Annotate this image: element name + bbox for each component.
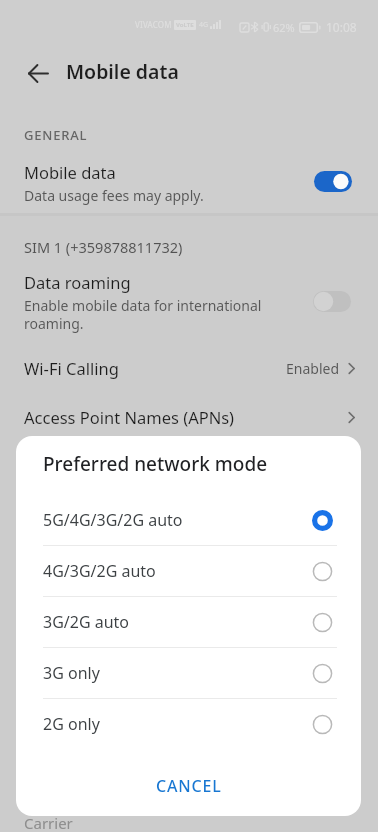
staticText: Mobile data [24, 161, 116, 183]
staticText: 3G/2G auto [43, 611, 312, 633]
button[interactable]: Turn on [313, 291, 351, 312]
button[interactable]: CANCEL [138, 765, 240, 807]
staticText: Access Point Names (APNs) [24, 406, 235, 428]
staticText: 10:08 [326, 19, 357, 35]
button[interactable]: Access Point Names (APNs) [0, 395, 378, 439]
staticText: 5G/4G/3G/2G auto [43, 509, 312, 531]
staticText: CANCEL [156, 775, 222, 797]
staticText: Data roaming [24, 271, 131, 293]
button[interactable]: 4G/3G/2G auto [16, 546, 361, 596]
staticText: 62% [273, 20, 295, 35]
staticText: 3G only [43, 662, 312, 684]
staticText: Enable mobile data for international roa… [24, 296, 271, 333]
staticText: 4G/3G/2G auto [43, 560, 312, 582]
button[interactable]: 3G only [16, 648, 361, 698]
staticText: VoLTE [176, 21, 194, 29]
staticText: Carrier [24, 813, 73, 832]
staticText: 4G [199, 20, 209, 30]
staticText: Mobile data [66, 58, 179, 85]
staticText: Data usage fees may apply. [24, 186, 204, 205]
button[interactable]: Back [22, 57, 54, 89]
button[interactable]: Wi-Fi Calling [0, 346, 378, 390]
staticText: GENERAL [24, 126, 88, 144]
button[interactable]: 5G/4G/3G/2G auto [16, 495, 361, 545]
button[interactable]: 2G only [16, 699, 361, 749]
button[interactable]: Turn off [314, 171, 352, 192]
staticText: Enabled [286, 359, 340, 378]
staticText: VIVACOM [135, 19, 172, 30]
button[interactable]: Data roaming [0, 262, 378, 334]
button[interactable]: 3G/2G auto [16, 597, 361, 647]
staticText: 2G only [43, 713, 312, 735]
button[interactable]: Mobile data [0, 152, 378, 210]
staticText: Wi-Fi Calling [24, 357, 119, 379]
staticText: Preferred network mode [43, 451, 268, 477]
staticText: SIM 1 (+359878811732) [24, 237, 183, 257]
